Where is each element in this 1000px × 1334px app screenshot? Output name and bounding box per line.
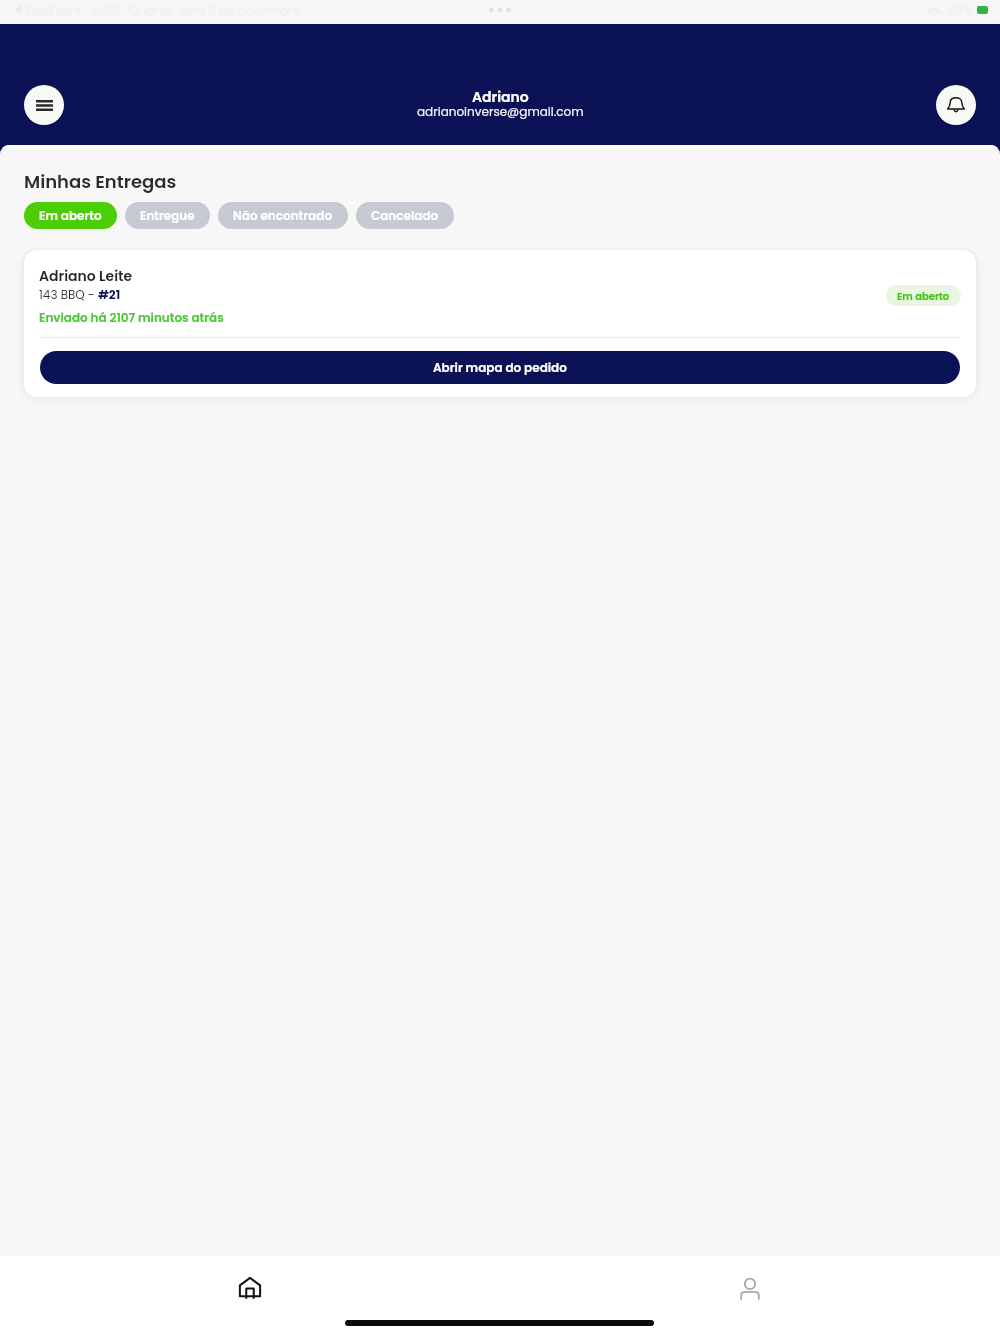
- button[interactable]: Entregue: [125, 202, 210, 229]
- staticText: 143 BBQ -: [39, 286, 98, 303]
- staticText: Cancelado: [371, 207, 439, 224]
- staticText: Em aberto: [897, 289, 950, 303]
- staticText: #21: [98, 286, 121, 303]
- staticText: Entregue: [140, 207, 195, 224]
- staticText: Adriano Leite: [39, 266, 133, 286]
- staticText: Não encontrado: [233, 207, 333, 224]
- staticText: Abrir mapa do pedido: [433, 359, 567, 376]
- button[interactable]: Menu: [24, 85, 64, 125]
- button[interactable]: Cancelado: [356, 202, 454, 229]
- staticText: Minhas Entregas: [24, 169, 177, 194]
- button[interactable]: Abrir mapa do pedido: [40, 351, 960, 384]
- staticText: Adriano: [472, 87, 529, 107]
- staticText: Em aberto: [39, 207, 102, 224]
- staticText: Enviado há 2107 minutos atrás: [39, 309, 224, 326]
- staticText: adrianoinverse@gmail.com: [417, 103, 584, 120]
- button[interactable]: Home: [0, 1256, 500, 1320]
- button[interactable]: Profile: [500, 1256, 1000, 1320]
- button[interactable]: Notifications: [936, 85, 976, 125]
- button[interactable]: Não encontrado: [218, 202, 348, 229]
- button[interactable]: Em aberto: [24, 202, 117, 229]
